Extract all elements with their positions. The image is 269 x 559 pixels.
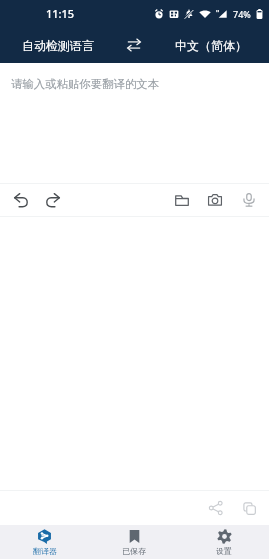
button[interactable]: 自动检测语言 — [0, 27, 116, 63]
staticText: 中文（简体） — [175, 38, 247, 53]
button[interactable]: Redo — [40, 187, 66, 213]
button[interactable]: 已保存 — [89, 525, 179, 559]
staticText: 已保存 — [122, 546, 146, 556]
button[interactable]: Undo — [8, 187, 34, 213]
button[interactable]: 设置 — [179, 525, 269, 559]
staticText: 翻译器 — [33, 546, 57, 556]
button[interactable]: 中文（简体） — [152, 27, 269, 63]
button[interactable]: Camera — [202, 187, 228, 213]
staticText: 设置 — [216, 546, 232, 556]
button[interactable]: Swap languages — [116, 27, 152, 63]
staticText: 74% — [233, 8, 251, 20]
staticText: 自动检测语言 — [22, 38, 94, 53]
staticText: 11:15 — [46, 6, 75, 21]
staticText: 请输入或粘贴你要翻译的文本 — [11, 77, 160, 91]
button[interactable]: Voice input — [236, 187, 262, 213]
button[interactable]: Copy — [236, 495, 262, 521]
button[interactable]: Share — [203, 495, 229, 521]
button[interactable]: Open file — [169, 187, 195, 213]
button[interactable]: 翻译器 — [0, 525, 89, 559]
